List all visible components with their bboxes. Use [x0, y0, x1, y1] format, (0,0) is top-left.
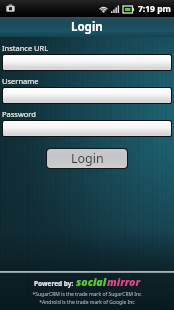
staticText: mirror [107, 275, 141, 289]
other: Notification [5, 3, 16, 14]
staticText: *SugarCRM is the trade mark of SugarCRM … [32, 291, 142, 298]
button[interactable]: Login [46, 148, 128, 169]
button[interactable]: Password field [2, 120, 172, 137]
staticText: Powered by: [34, 279, 74, 288]
staticText: Login [71, 19, 103, 35]
staticText: *Android is the trade mark of Google Inc [39, 299, 135, 306]
staticText: Username [2, 76, 39, 86]
button[interactable]: Instance URL field [2, 54, 172, 71]
staticText: Instance URL [2, 43, 49, 53]
staticText: Password [2, 109, 36, 119]
staticText: Login [71, 150, 104, 167]
staticText: 7:19 pm [138, 3, 171, 15]
staticText: social [76, 275, 107, 289]
button[interactable]: Username field [2, 87, 172, 104]
